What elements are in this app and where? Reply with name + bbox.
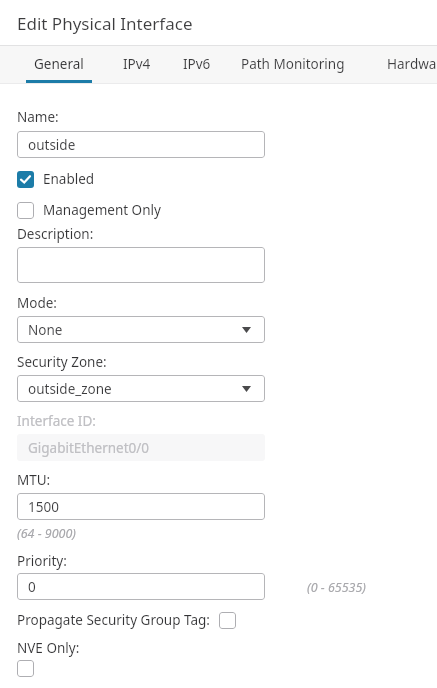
button[interactable]: outside_zone: [17, 375, 265, 402]
staticText: 0: [28, 578, 36, 596]
staticText: (0 - 65535): [307, 579, 366, 596]
staticText: IPv4: [123, 55, 151, 73]
staticText: outside: [28, 136, 76, 154]
button[interactable]: GigabitEthernet0/0: [17, 434, 265, 461]
staticText: Enabled: [43, 170, 95, 188]
staticText: Priority:: [17, 552, 67, 570]
staticText: outside_zone: [28, 380, 112, 398]
button[interactable]: 0: [17, 573, 265, 600]
staticText: Path Monitoring: [241, 55, 345, 73]
button[interactable]: [17, 247, 265, 283]
button[interactable]: Management Only: [17, 199, 161, 221]
staticText: Edit Physical Interface: [17, 12, 193, 35]
staticText: Description:: [17, 225, 94, 243]
button[interactable]: General: [20, 45, 97, 83]
button[interactable]: NVE Only: [17, 660, 34, 677]
button[interactable]: outside: [17, 131, 265, 158]
staticText: None: [28, 321, 63, 339]
staticText: Name:: [17, 108, 59, 126]
staticText: Propagate Security Group Tag:: [17, 611, 210, 629]
button[interactable]: 1500: [17, 493, 265, 520]
staticText: IPv6: [183, 55, 211, 73]
staticText: MTU:: [17, 471, 51, 489]
staticText: NVE Only:: [17, 639, 80, 657]
staticText: Interface ID:: [17, 412, 96, 430]
button[interactable]: Enabled: [17, 168, 95, 190]
staticText: Management Only: [43, 201, 161, 219]
staticText: 1500: [28, 498, 59, 516]
staticText: (64 - 9000): [17, 525, 76, 542]
staticText: General: [34, 55, 84, 73]
staticText: GigabitEthernet0/0: [28, 439, 150, 457]
button[interactable]: None: [17, 316, 265, 343]
button[interactable]: IPv4: [108, 45, 166, 83]
staticText: Security Zone:: [17, 353, 107, 371]
button[interactable]: Propagate Security Group Tag:: [17, 610, 236, 630]
button[interactable]: IPv6: [168, 45, 226, 83]
button[interactable]: Hardware: [368, 45, 437, 83]
staticText: Hardware: [387, 55, 437, 73]
button[interactable]: Path Monitoring: [230, 45, 355, 83]
staticText: Mode:: [17, 294, 57, 312]
